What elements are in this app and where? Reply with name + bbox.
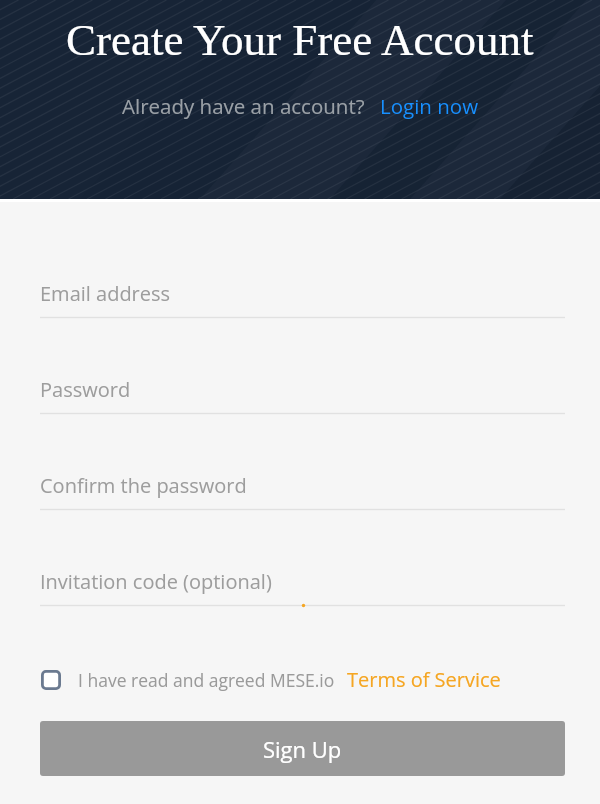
button[interactable]: Login now xyxy=(380,92,479,120)
button[interactable]: Password xyxy=(40,376,565,415)
staticText: Sign Up xyxy=(263,734,342,764)
staticText: Login now xyxy=(380,92,479,120)
staticText: Password xyxy=(40,376,131,403)
button[interactable]: Sign Up xyxy=(40,721,565,776)
staticText: Confirm the password xyxy=(40,472,247,499)
staticText: Create Your Free Account xyxy=(66,15,534,65)
button[interactable]: Invitation code (optional) xyxy=(40,568,565,607)
staticText: Invitation code (optional) xyxy=(40,568,272,595)
button[interactable]: Terms of Service xyxy=(347,666,501,693)
staticText: Email address xyxy=(40,280,171,307)
button[interactable]: Confirm the password xyxy=(40,472,565,511)
staticText: Already have an account? xyxy=(122,92,365,120)
button[interactable]: Agree to terms xyxy=(41,670,61,690)
staticText: I have read and agreed MESE.io xyxy=(78,668,335,692)
button[interactable]: Email address xyxy=(40,280,565,319)
staticText: Terms of Service xyxy=(347,666,501,693)
